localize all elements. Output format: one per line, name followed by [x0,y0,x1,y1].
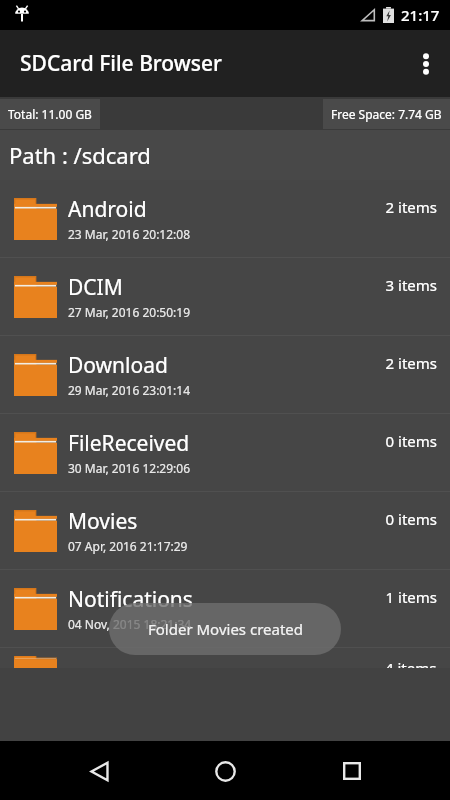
staticText: 30 Mar, 2016 12:29:06 [68,460,191,476]
staticText: 3 items [385,275,437,295]
button[interactable]: DCIM [0,258,450,335]
button[interactable]: Notifications [0,570,450,647]
staticText: 07 Apr, 2016 21:17:29 [68,538,188,554]
button[interactable]: More options [402,40,450,88]
button[interactable]: Movies [0,492,450,569]
staticText: 21:17 [401,5,440,25]
staticText: SDCard File Browser [20,49,222,78]
staticText: 23 Mar, 2016 20:12:08 [68,226,191,242]
button[interactable]: 4 items [0,648,450,668]
staticText: Android [68,195,147,224]
staticText: 0 items [385,431,437,451]
staticText: 2 items [385,353,437,373]
staticText: 2 items [385,197,437,217]
staticText: 4 items [385,658,437,668]
staticText: 0 items [385,509,437,529]
button[interactable]: Recent apps [324,743,380,799]
staticText: 1 items [385,587,437,607]
staticText: DCIM [68,273,123,302]
staticText: Path : /sdcard [9,140,151,170]
staticText: Download [68,351,168,380]
staticText: 29 Mar, 2016 23:01:14 [68,382,191,398]
staticText: Notifications [68,585,193,614]
staticText: 04 Nov, 2015 18:21:34 [68,616,192,632]
button[interactable]: Home [197,743,253,799]
button[interactable]: Android [0,180,450,257]
staticText: Movies [68,507,138,536]
button[interactable]: Back [71,743,127,799]
staticText: FileReceived [68,429,190,458]
staticText: 27 Mar, 2016 20:50:19 [68,304,191,320]
staticText: Total: 11.00 GB [8,106,92,122]
button[interactable]: Download [0,336,450,413]
staticText: Free Space: 7.74 GB [331,106,442,122]
button[interactable]: FileReceived [0,414,450,491]
staticText: Folder Movies created [148,619,303,639]
